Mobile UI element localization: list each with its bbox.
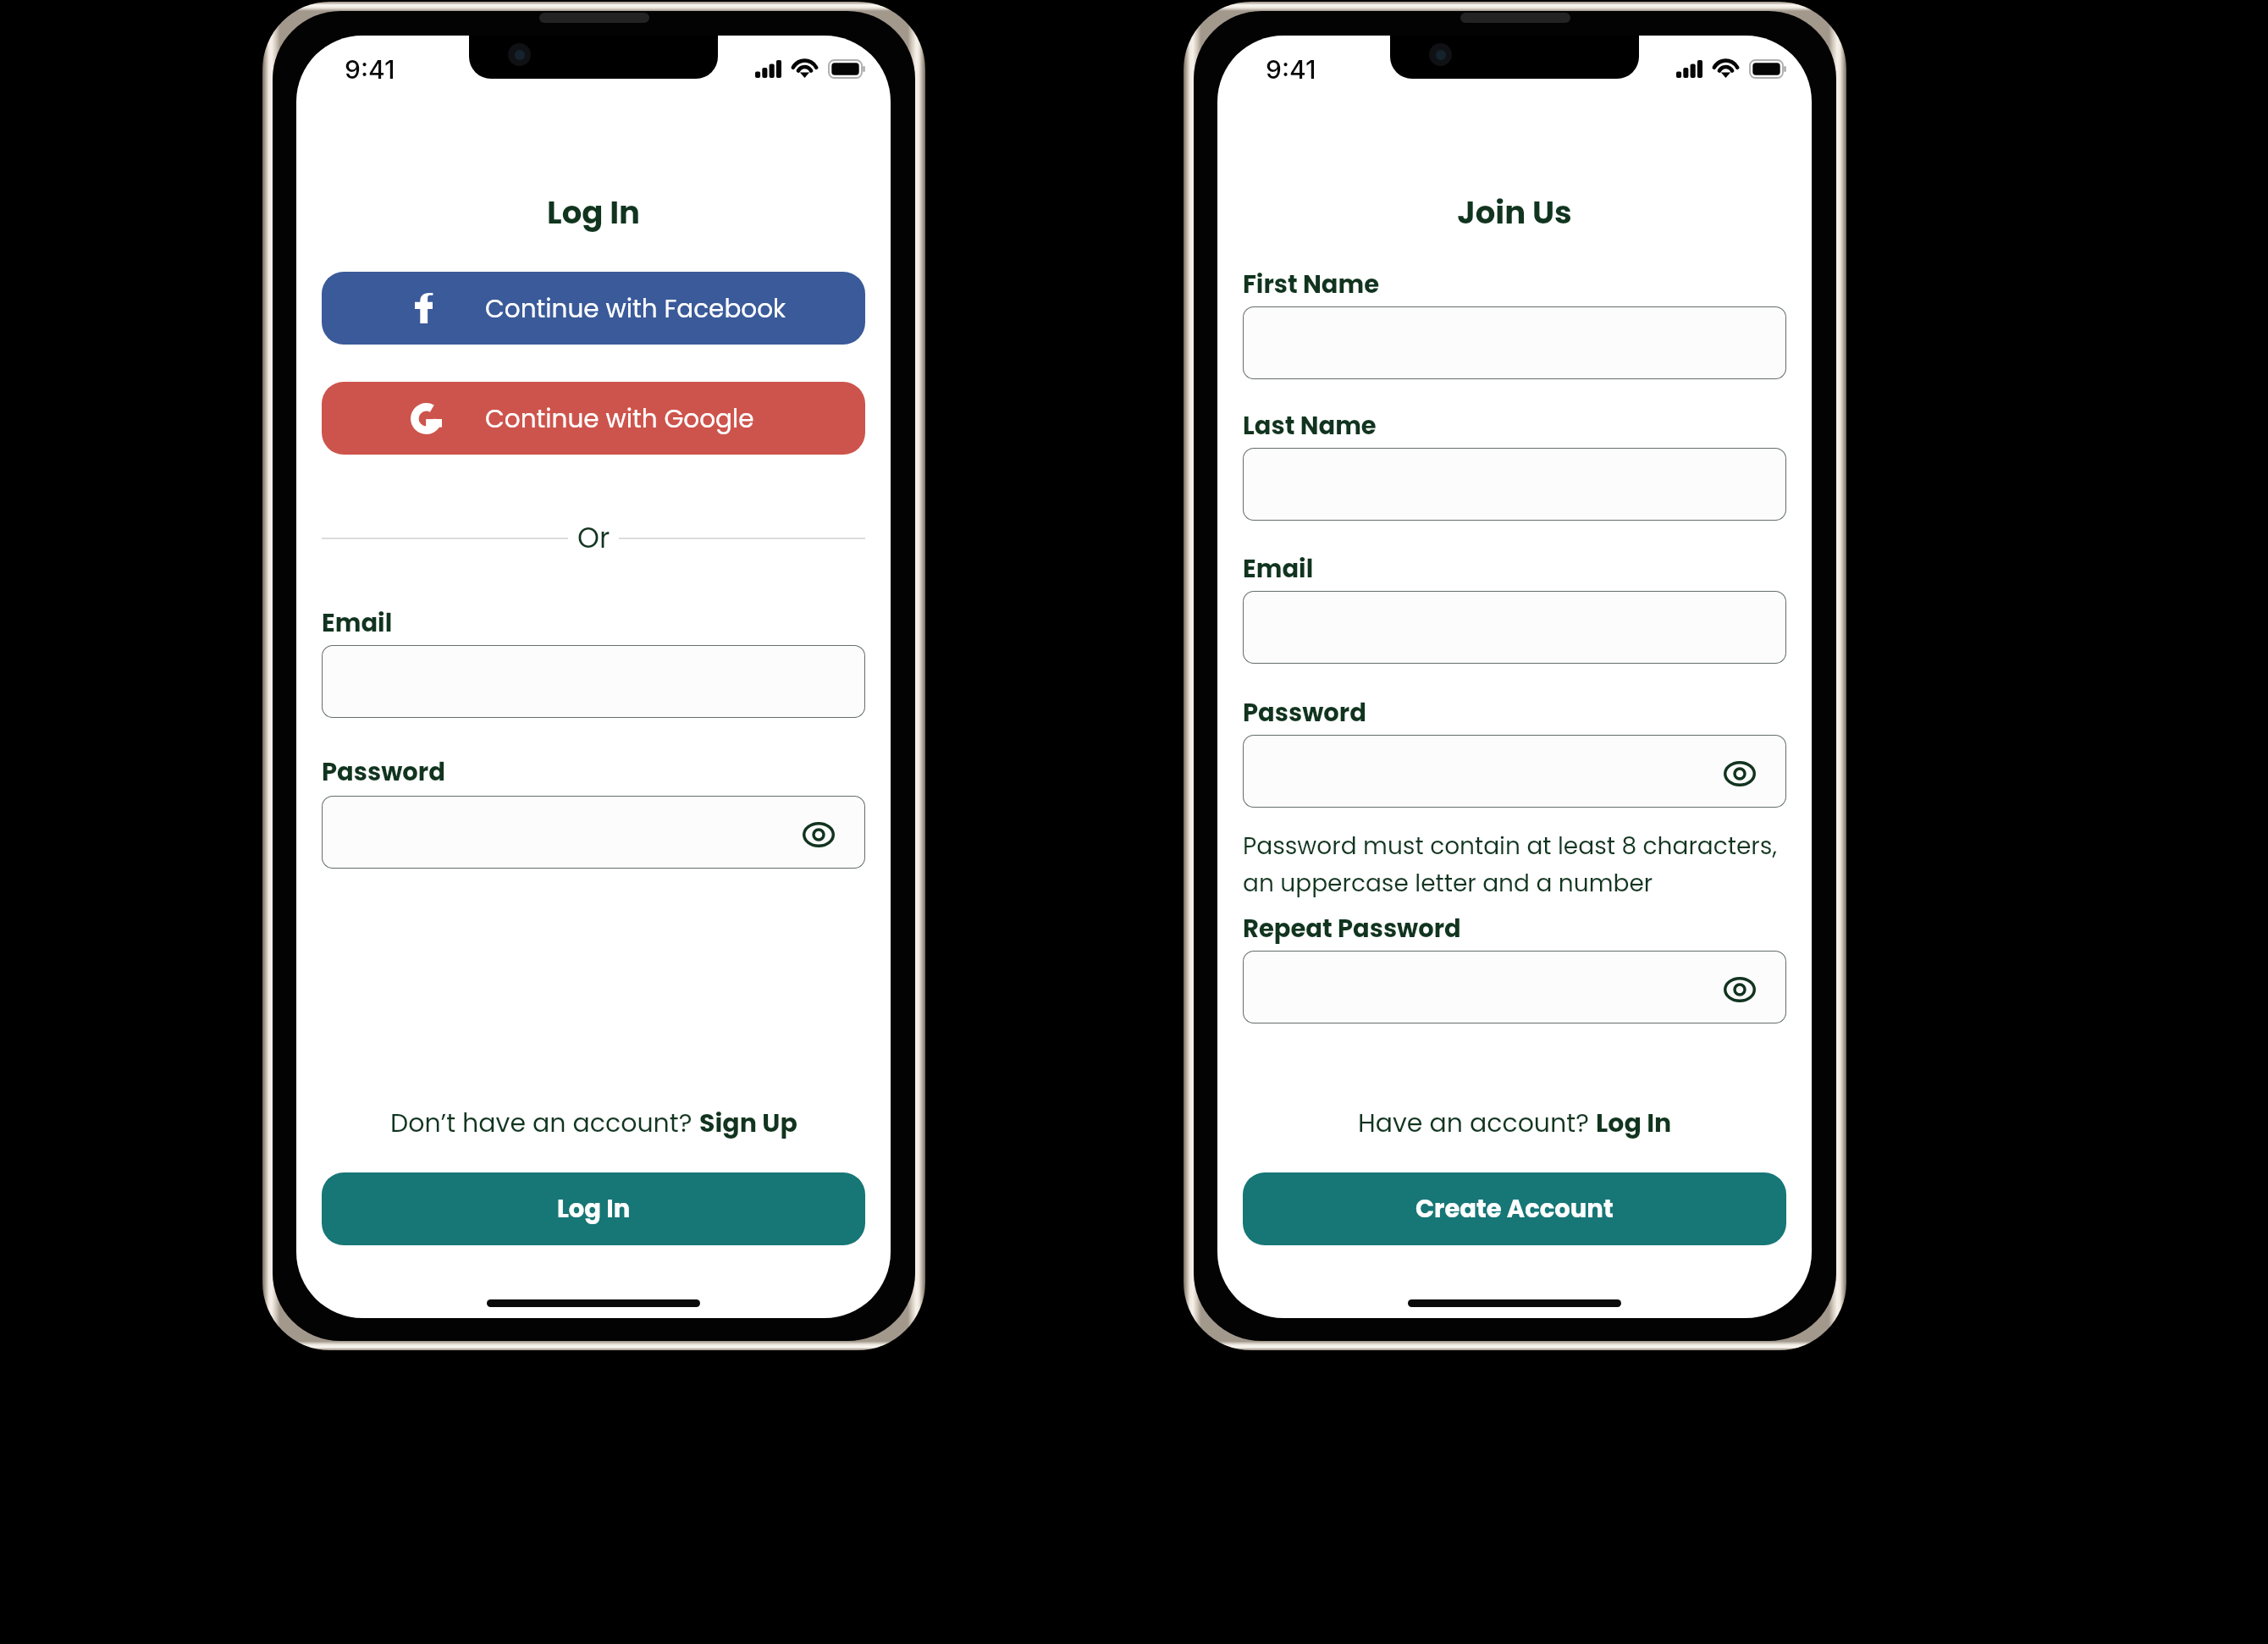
staticText: Log In (1596, 1106, 1672, 1141)
staticText: Password (1243, 696, 1366, 731)
staticText: Last Name (1243, 409, 1377, 444)
button[interactable]: Show password (1716, 750, 1763, 797)
staticText: Repeat Password (1243, 912, 1461, 946)
staticText: Password (322, 755, 445, 790)
button[interactable]: Create Account (1243, 1172, 1786, 1245)
staticText: Continue with Google (485, 401, 754, 436)
button[interactable] (1243, 591, 1786, 664)
staticText: Join Us (1243, 190, 1786, 234)
staticText: 9:41 (1266, 54, 1316, 85)
staticText: Or (577, 518, 610, 555)
staticText: Email (322, 606, 393, 641)
button[interactable] (322, 645, 865, 718)
button[interactable]: Don’t have an account? (390, 1106, 797, 1141)
button[interactable]: Show password (1243, 735, 1786, 808)
staticText: Have an account? (1358, 1106, 1596, 1141)
staticText: Don’t have an account? (390, 1106, 699, 1141)
button[interactable]: Show password (795, 811, 842, 858)
button[interactable]: Continue with Google (322, 382, 865, 455)
staticText: Sign Up (699, 1106, 797, 1141)
staticText: Email (1243, 552, 1314, 587)
staticText: Log In (557, 1192, 631, 1227)
button[interactable]: Show password (1716, 966, 1763, 1013)
button[interactable]: Continue with Facebook (322, 272, 865, 345)
staticText: 9:41 (345, 54, 395, 85)
staticText: Create Account (1415, 1192, 1614, 1227)
button[interactable]: Show password (322, 796, 865, 869)
button[interactable]: Show password (1243, 951, 1786, 1023)
staticText: Password must contain at least 8 charact… (1243, 830, 1777, 899)
button[interactable]: Log In (322, 1172, 865, 1245)
button[interactable] (1243, 306, 1786, 379)
button[interactable]: Have an account? (1358, 1106, 1672, 1141)
staticText: Continue with Facebook (485, 291, 786, 326)
button[interactable] (1243, 448, 1786, 521)
staticText: Log In (322, 190, 865, 234)
staticText: First Name (1243, 268, 1380, 302)
